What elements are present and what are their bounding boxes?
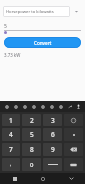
button[interactable]: Backspace [64,143,83,156]
staticText: 0 [30,161,34,169]
staticText: 5 [30,130,34,139]
staticText: 3.73 kW [4,52,21,58]
button[interactable]: 2 [22,114,41,126]
staticText: 4 [9,130,13,139]
staticText: , [10,161,12,168]
button[interactable]: More suggestions [65,101,74,112]
button[interactable]: Open unit menu [70,6,82,17]
staticText: Convert [34,40,52,46]
button[interactable]: Horsepower to kilowatts [3,6,70,17]
staticText: 1 [9,116,13,125]
button[interactable]: 0 [22,158,41,171]
button[interactable]: 6 [43,128,62,141]
button[interactable]: 8 [22,143,41,156]
button[interactable]: Suggestion 2 [20,101,29,112]
staticText: 5 [4,23,7,30]
button[interactable]: Suggestion 0 [2,101,11,112]
staticText: 8 [30,145,34,154]
button[interactable]: Suggestion 3 [29,101,38,112]
button[interactable]: Suggestion 6 [56,101,65,112]
button[interactable]: Space [43,158,62,171]
button[interactable]: 7 [2,143,20,156]
button[interactable]: Convert [4,37,81,48]
button[interactable]: 1 [2,114,20,126]
button[interactable]: Home [29,173,57,184]
button[interactable]: 5 [4,22,81,35]
button[interactable]: Voice input [74,101,83,112]
button[interactable]: 9 [43,143,62,156]
button[interactable]: Period [64,128,83,141]
staticText: 6 [51,130,55,139]
button[interactable]: 5 [22,128,41,141]
button[interactable]: Recent apps [0,173,29,184]
button[interactable]: Suggestion 5 [47,101,56,112]
button[interactable]: 4 [2,128,20,141]
staticText: 2 [30,116,34,125]
button[interactable]: Suggestion 1 [11,101,20,112]
button[interactable]: 3 [43,114,62,126]
button[interactable]: Enter [64,158,83,171]
button[interactable]: Suggestion 4 [38,101,47,112]
button[interactable]: Back [57,173,85,184]
staticText: 7 [9,145,13,154]
button[interactable]: , [2,158,20,171]
staticText: Horsepower to kilowatts [6,9,54,15]
staticText: 3 [51,116,55,125]
button[interactable]: Emoji [64,114,83,126]
staticText: 9 [51,145,55,154]
